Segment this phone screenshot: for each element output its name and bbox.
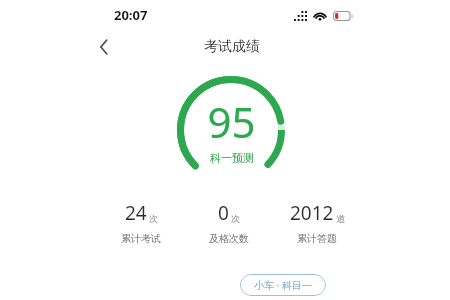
button[interactable]: 小车 · 科目一 bbox=[240, 274, 326, 296]
button[interactable]: Back bbox=[89, 32, 119, 62]
staticText: 道 bbox=[336, 213, 345, 224]
staticText: 24 bbox=[125, 200, 147, 226]
button[interactable]: 0 bbox=[185, 200, 273, 245]
staticText: 95 bbox=[207, 93, 256, 150]
staticText: 科一预测 bbox=[210, 151, 254, 165]
staticText: 2012 bbox=[290, 200, 334, 226]
staticText: 累计考试 bbox=[121, 232, 161, 245]
staticText: 考试成绩 bbox=[204, 38, 260, 56]
staticText: 及格次数 bbox=[209, 232, 249, 245]
button[interactable]: 24 bbox=[97, 200, 185, 245]
staticText: 次 bbox=[231, 213, 240, 224]
button[interactable]: 2012 bbox=[273, 200, 361, 245]
staticText: 0 bbox=[218, 200, 229, 226]
staticText: 小车 · 科目一 bbox=[254, 278, 312, 292]
staticText: 20:07 bbox=[114, 6, 148, 24]
staticText: 累计答题 bbox=[297, 232, 337, 245]
staticText: 次 bbox=[149, 213, 158, 224]
